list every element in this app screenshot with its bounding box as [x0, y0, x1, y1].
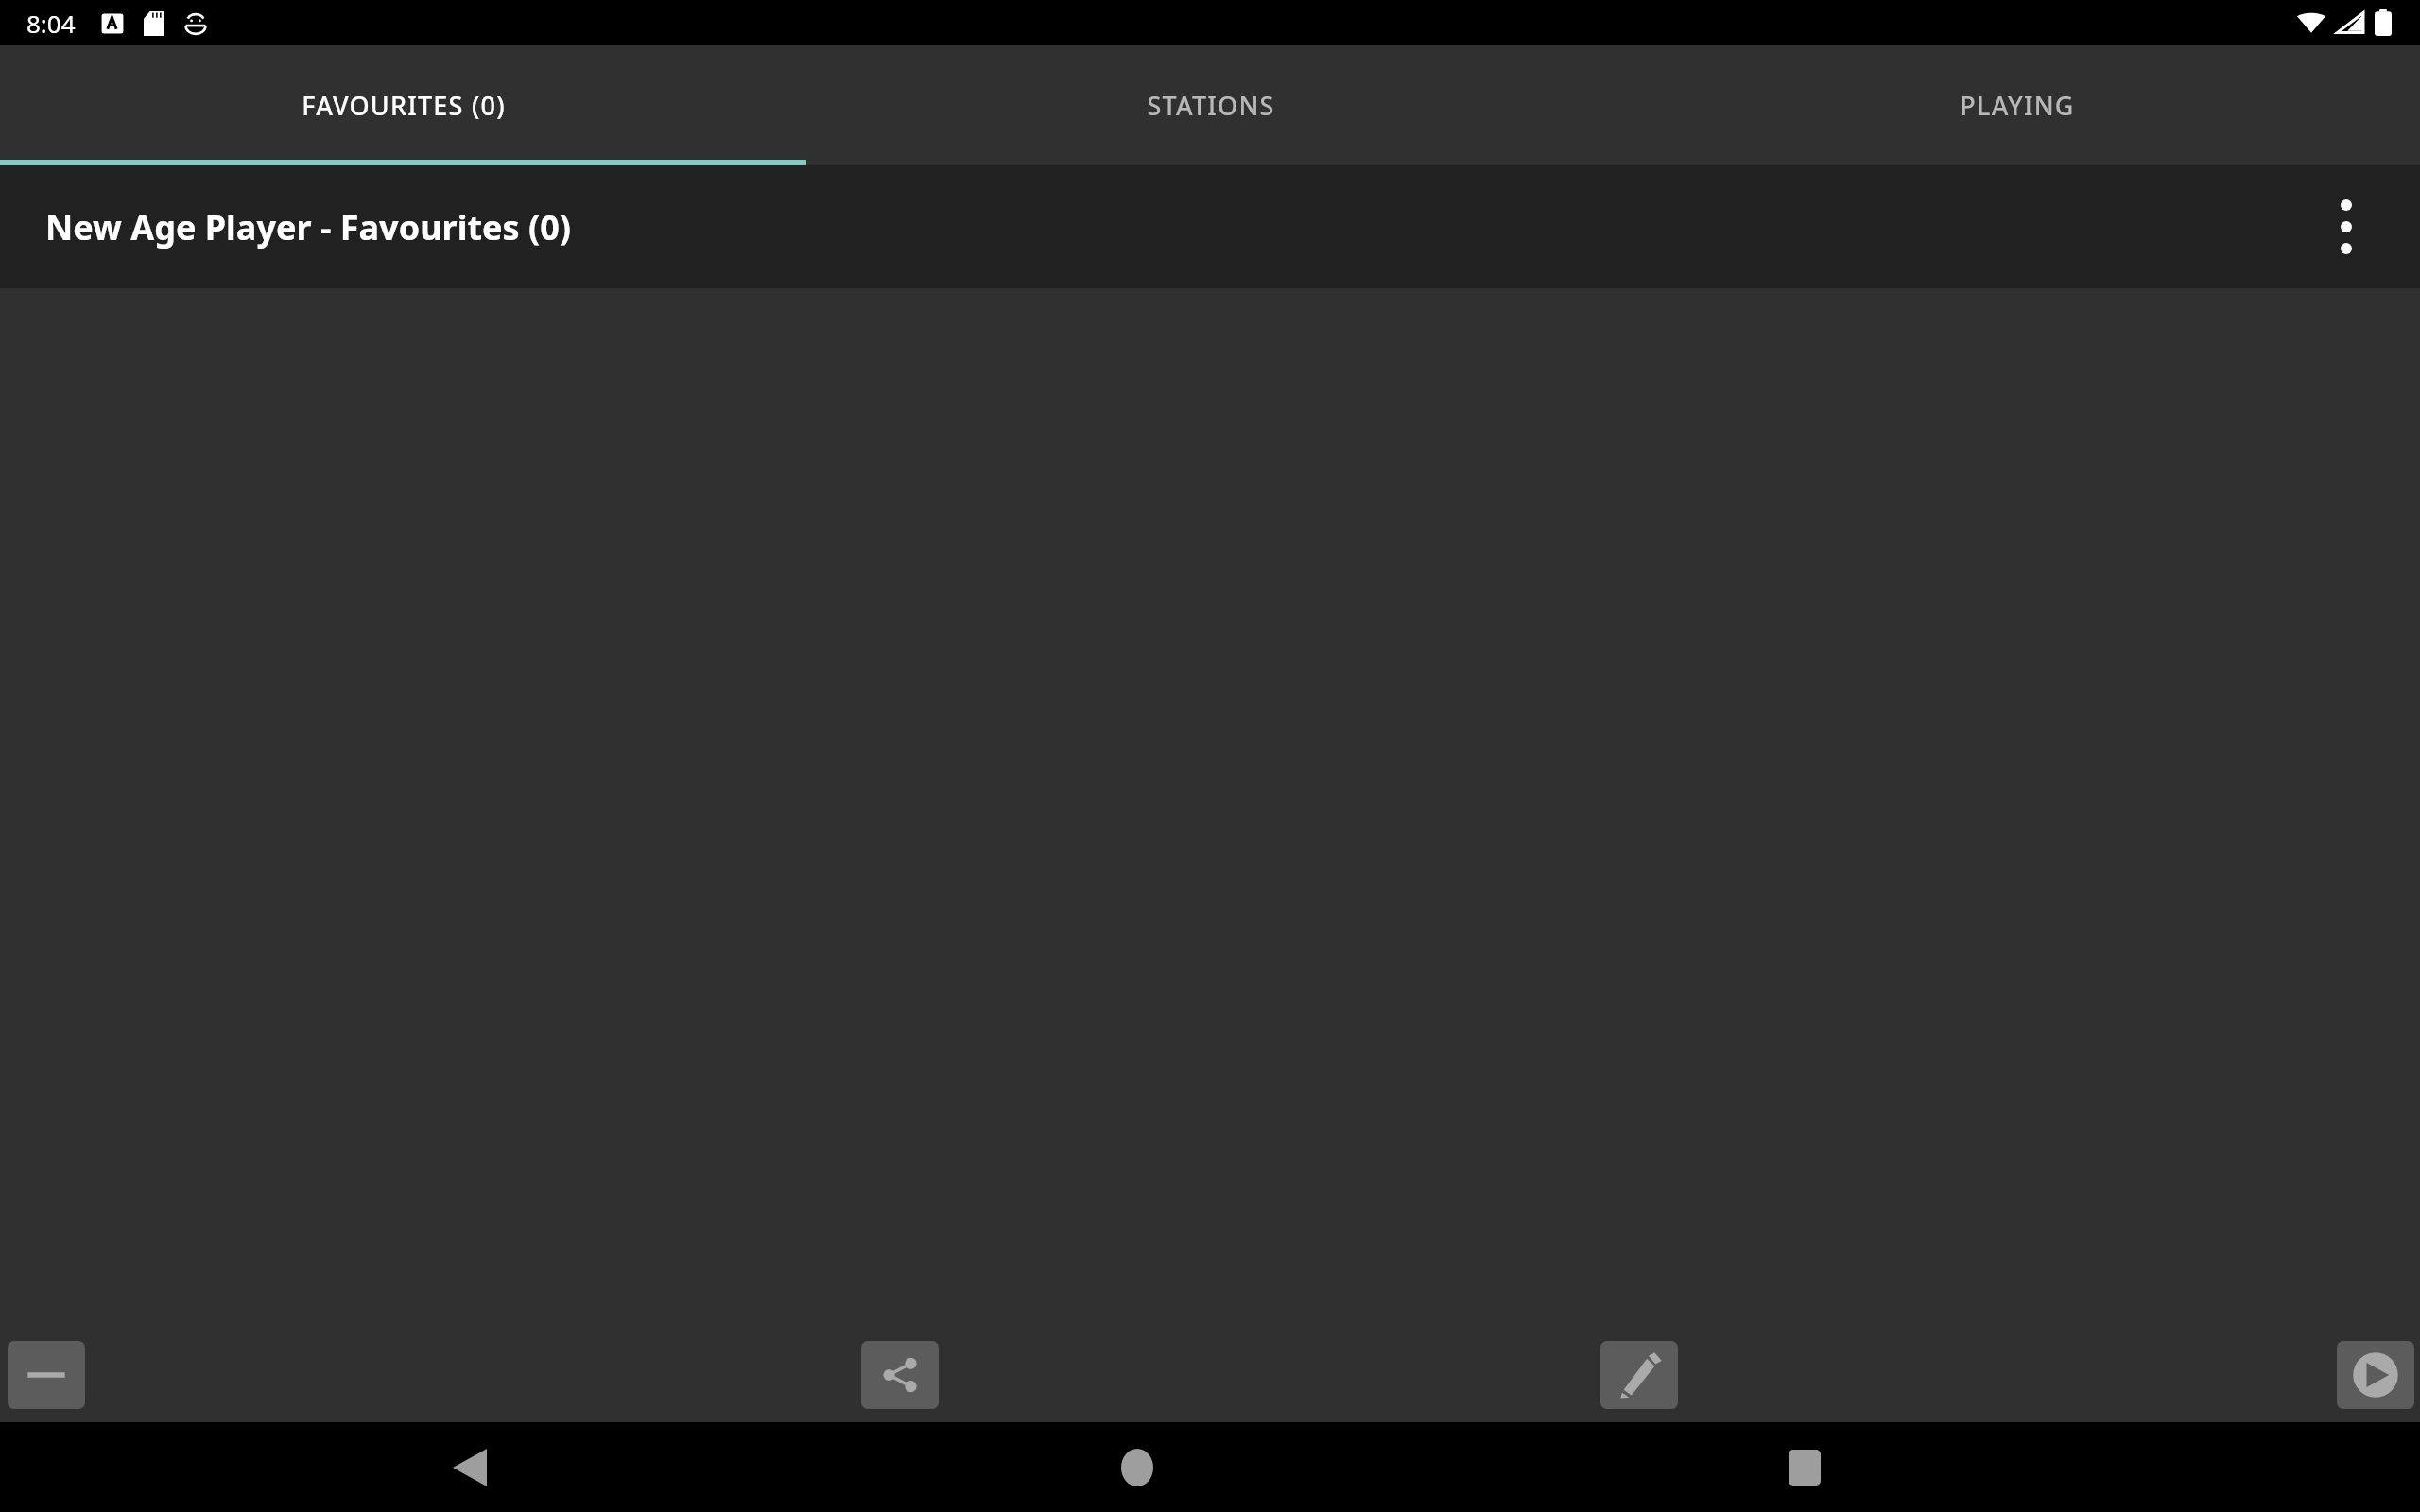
- button[interactable]: Remove from favourites: [8, 1341, 85, 1409]
- staticText: FAVOURITES (0): [302, 88, 506, 123]
- staticText: 8:04: [26, 7, 76, 40]
- staticText: STATIONS: [1147, 88, 1275, 123]
- button[interactable]: PLAYING: [1614, 45, 2420, 165]
- button[interactable]: Edit: [1600, 1341, 1678, 1409]
- button[interactable]: Recent apps: [1753, 1422, 1857, 1512]
- button[interactable]: Home: [1085, 1422, 1189, 1512]
- button[interactable]: More options: [2307, 187, 2386, 266]
- button[interactable]: STATIONS: [807, 45, 1614, 165]
- button[interactable]: FAVOURITES (0): [0, 45, 807, 165]
- button[interactable]: Share: [861, 1341, 939, 1409]
- staticText: New Age Player - Favourites (0): [45, 204, 571, 250]
- button[interactable]: Back: [418, 1422, 522, 1512]
- staticText: PLAYING: [1960, 88, 2075, 123]
- button[interactable]: Play: [2337, 1341, 2414, 1409]
